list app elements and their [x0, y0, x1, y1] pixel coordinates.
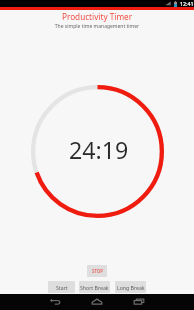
button[interactable]: Start — [48, 281, 75, 293]
button[interactable]: Recents — [128, 294, 150, 310]
staticText: Productivity Timer — [0, 11, 194, 22]
button[interactable]: Short Break — [79, 281, 110, 293]
staticText: Long Break — [117, 284, 145, 291]
button[interactable]: Long Break — [115, 281, 146, 293]
staticText: The simple time management timer — [0, 23, 194, 30]
staticText: 12:41 — [180, 0, 194, 7]
staticText: STOP — [92, 268, 103, 274]
button[interactable]: Home — [86, 294, 108, 310]
staticText: 24:19 — [69, 134, 129, 166]
button[interactable]: STOP — [87, 265, 107, 277]
staticText: Short Break — [80, 284, 109, 291]
button[interactable]: Back — [44, 294, 66, 310]
staticText: Start — [56, 284, 68, 291]
